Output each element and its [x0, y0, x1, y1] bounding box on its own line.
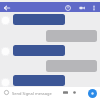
button[interactable]	[46, 60, 97, 72]
button[interactable]: Contact avatar	[1, 16, 10, 25]
button[interactable]: Attach	[70, 88, 79, 97]
button[interactable]: Video call	[77, 3, 86, 12]
staticText: Send Signal message	[12, 91, 52, 96]
button[interactable]: Emoji	[2, 88, 11, 97]
button[interactable]: Send	[88, 89, 97, 98]
button[interactable]	[13, 45, 65, 56]
button[interactable]: Contact avatar	[1, 47, 10, 56]
button[interactable]	[46, 30, 97, 42]
button[interactable]: Camera	[61, 88, 70, 97]
button[interactable]: Back	[2, 3, 11, 12]
button[interactable]	[13, 14, 65, 25]
button[interactable]	[13, 75, 65, 86]
button[interactable]: Disappearing messages	[63, 3, 72, 12]
button[interactable]: Contact avatar	[1, 78, 10, 87]
button[interactable]: More options	[89, 3, 98, 12]
